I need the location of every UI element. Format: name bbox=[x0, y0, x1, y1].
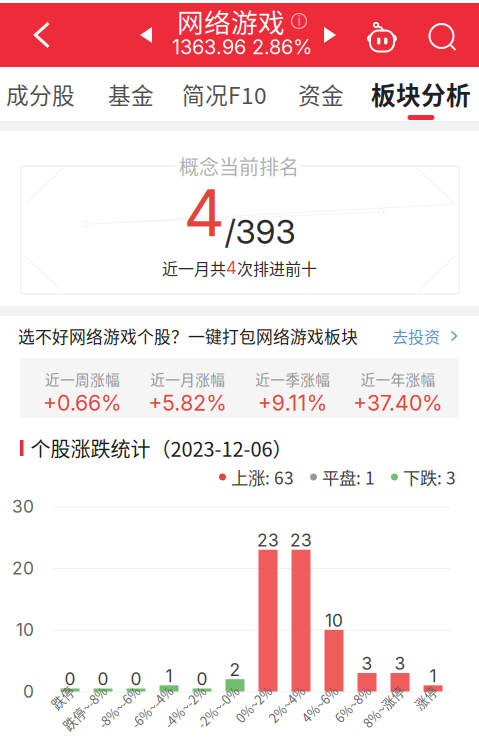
staticText: 6%~8% bbox=[334, 704, 379, 722]
button[interactable]: 返回 bbox=[16, 3, 68, 67]
staticText: 0 bbox=[97, 668, 108, 689]
button[interactable]: 简况F10 bbox=[178, 67, 270, 121]
staticText: 8%~涨停 bbox=[360, 704, 412, 722]
staticText: 涨停 bbox=[419, 704, 445, 722]
staticText: 30 bbox=[12, 496, 34, 517]
staticText: +9.11% bbox=[258, 390, 328, 416]
button[interactable]: 网络游戏 bbox=[167, 6, 317, 60]
staticText: 0 bbox=[64, 668, 75, 689]
staticText: 10 bbox=[325, 610, 343, 631]
staticText: +5.82% bbox=[148, 390, 227, 416]
staticText: 1 bbox=[429, 665, 436, 686]
staticText: +37.40% bbox=[353, 390, 443, 416]
staticText: 平盘: 1 bbox=[322, 464, 375, 490]
staticText: 3 bbox=[394, 653, 405, 674]
staticText: 0 bbox=[130, 668, 141, 689]
staticText: 板块分析 bbox=[371, 76, 471, 112]
button[interactable]: 搜索 bbox=[417, 6, 469, 70]
staticText: -6%~-4% bbox=[128, 704, 181, 722]
staticText: +0.66% bbox=[43, 390, 122, 416]
staticText: -2%~-0% bbox=[194, 704, 247, 722]
staticText: 近一年涨幅 bbox=[360, 368, 435, 390]
staticText: 近一季涨幅 bbox=[255, 368, 330, 390]
staticText: 23 bbox=[257, 530, 279, 551]
staticText: 0 bbox=[196, 668, 207, 689]
staticText: 基金 bbox=[108, 78, 154, 110]
staticText: 成分股 bbox=[6, 78, 75, 110]
staticText: /393 bbox=[224, 211, 295, 252]
staticText: 10 bbox=[16, 619, 34, 640]
staticText: i bbox=[297, 13, 300, 29]
staticText: 1363.96 2.86% bbox=[172, 35, 312, 59]
staticText: -8%~-6% bbox=[95, 704, 148, 722]
staticText: 0%~2% bbox=[235, 704, 280, 722]
button[interactable]: 上一只 bbox=[128, 3, 164, 67]
button[interactable]: 选不好网络游戏个股？一键打包网络游戏板块 bbox=[0, 316, 479, 358]
staticText: 跌停 bbox=[56, 704, 82, 722]
staticText: 4%~6% bbox=[301, 704, 346, 722]
staticText: 去投资 bbox=[392, 324, 440, 348]
staticText: 个股涨跌统计（2023-12-06） bbox=[30, 433, 292, 462]
button[interactable]: 基金 bbox=[101, 67, 161, 121]
staticText: 1 bbox=[165, 665, 172, 686]
staticText: 20 bbox=[12, 558, 34, 579]
staticText: 概念当前排名 bbox=[179, 151, 299, 180]
button[interactable]: 板块分析 bbox=[371, 67, 471, 121]
button[interactable]: 成分股 bbox=[2, 67, 78, 121]
staticText: 网络游戏 bbox=[177, 2, 285, 40]
staticText: 3 bbox=[361, 653, 372, 674]
staticText: 简况F10 bbox=[182, 78, 267, 110]
staticText: 次排进前十 bbox=[237, 256, 317, 280]
staticText: 0 bbox=[23, 681, 34, 702]
staticText: 近一月共 bbox=[162, 256, 226, 280]
staticText: 资金 bbox=[298, 78, 344, 110]
staticText: 4 bbox=[183, 174, 224, 252]
staticText: 23 bbox=[290, 530, 312, 551]
staticText: 2 bbox=[229, 659, 240, 680]
staticText: 上涨: 63 bbox=[231, 464, 294, 490]
staticText: 近一周涨幅 bbox=[45, 368, 120, 390]
staticText: 选不好网络游戏个股？一键打包网络游戏板块 bbox=[18, 324, 358, 348]
button[interactable]: 资金 bbox=[291, 67, 351, 121]
staticText: 跌停~-8% bbox=[59, 704, 115, 722]
staticText: 近一月涨幅 bbox=[150, 368, 225, 390]
staticText: 2%~4% bbox=[268, 704, 313, 722]
button[interactable]: 智能助手 bbox=[356, 1, 408, 65]
staticText: -4%~-2% bbox=[161, 704, 214, 722]
staticText: 4 bbox=[226, 258, 237, 278]
button[interactable]: 下一只 bbox=[312, 3, 348, 67]
staticText: 下跌: 3 bbox=[403, 464, 456, 490]
